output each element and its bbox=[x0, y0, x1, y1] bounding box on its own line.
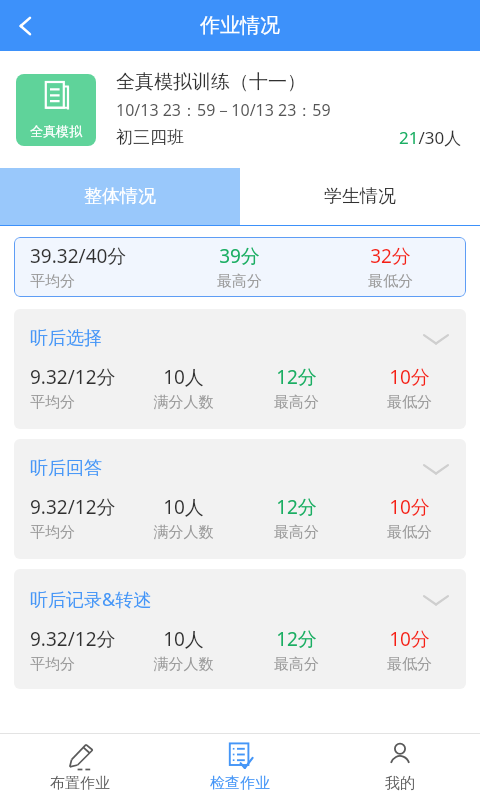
staticText: 32分 bbox=[315, 243, 466, 269]
staticText: 听后回答 bbox=[30, 457, 102, 480]
staticText: 39.32/40分 bbox=[30, 243, 164, 269]
staticText: 最低分 bbox=[353, 523, 466, 542]
staticText: 10分 bbox=[353, 364, 466, 390]
staticText: 平均分 bbox=[30, 272, 164, 291]
staticText: 10人 bbox=[127, 626, 240, 652]
staticText: 10/13 23：59－10/13 23：59 bbox=[116, 99, 331, 121]
button[interactable]: 听后选择 bbox=[14, 309, 466, 429]
staticText: 最高分 bbox=[240, 393, 353, 412]
staticText: 10分 bbox=[353, 494, 466, 520]
staticText: 满分人数 bbox=[127, 655, 240, 674]
staticText: 作业情况 bbox=[200, 13, 280, 38]
staticText: 10人 bbox=[127, 364, 240, 390]
staticText: 我的 bbox=[385, 774, 415, 793]
staticText: 全真模拟训练（十一） bbox=[116, 70, 306, 94]
button[interactable]: 全真模拟 bbox=[16, 74, 96, 146]
button[interactable]: 听后记录&转述 bbox=[14, 569, 466, 689]
staticText: 满分人数 bbox=[127, 393, 240, 412]
button[interactable]: Back bbox=[0, 0, 52, 51]
staticText: 最低分 bbox=[315, 272, 466, 291]
staticText: 整体情况 bbox=[84, 185, 156, 208]
staticText: 最低分 bbox=[353, 655, 466, 674]
button[interactable]: 整体情况 bbox=[0, 168, 240, 225]
staticText: 9.32/12分 bbox=[30, 494, 127, 520]
staticText: 10分 bbox=[353, 626, 466, 652]
button[interactable]: 我的 bbox=[320, 734, 480, 800]
button[interactable]: 检查作业 bbox=[160, 734, 320, 800]
staticText: 听后选择 bbox=[30, 327, 102, 350]
staticText: 9.32/12分 bbox=[30, 626, 127, 652]
staticText: 平均分 bbox=[30, 393, 127, 412]
staticText: 最高分 bbox=[164, 272, 315, 291]
staticText: 12分 bbox=[240, 364, 353, 390]
staticText: 9.32/12分 bbox=[30, 364, 127, 390]
button[interactable]: 听后回答 bbox=[14, 439, 466, 559]
staticText: 全真模拟 bbox=[30, 123, 82, 139]
button[interactable]: 布置作业 bbox=[0, 734, 160, 800]
staticText: 10人 bbox=[127, 494, 240, 520]
staticText: 最高分 bbox=[240, 523, 353, 542]
staticText: 听后记录&转述 bbox=[30, 587, 152, 612]
button[interactable]: 39.32/40分 bbox=[14, 237, 466, 297]
staticText: 学生情况 bbox=[324, 185, 396, 208]
staticText: 12分 bbox=[240, 494, 353, 520]
staticText: 布置作业 bbox=[50, 774, 110, 793]
staticText: 12分 bbox=[240, 626, 353, 652]
staticText: 平均分 bbox=[30, 655, 127, 674]
staticText: 满分人数 bbox=[127, 523, 240, 542]
staticText: 最低分 bbox=[353, 393, 466, 412]
button[interactable]: 学生情况 bbox=[240, 168, 480, 225]
staticText: 最高分 bbox=[240, 655, 353, 674]
staticText: 平均分 bbox=[30, 523, 127, 542]
staticText: 39分 bbox=[164, 243, 315, 269]
staticText: 初三四班 bbox=[116, 127, 184, 148]
staticText: 检查作业 bbox=[210, 774, 270, 793]
staticText: 21/30人 bbox=[399, 126, 462, 149]
